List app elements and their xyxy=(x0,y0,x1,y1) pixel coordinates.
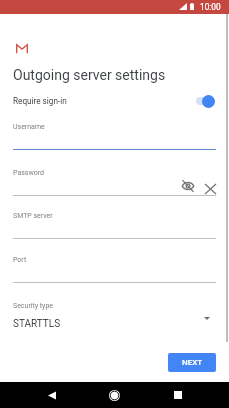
button[interactable] xyxy=(0,118,229,150)
staticText: SMTP server xyxy=(13,212,53,220)
button[interactable]: Home xyxy=(101,382,128,408)
staticText: Username xyxy=(13,123,45,131)
staticText: Security type xyxy=(13,302,54,310)
button[interactable] xyxy=(0,164,229,196)
button[interactable]: Recent apps xyxy=(164,382,191,408)
button[interactable] xyxy=(0,207,229,239)
button[interactable]: Show password xyxy=(180,179,195,193)
staticText: Require sign-in xyxy=(13,96,67,106)
staticText: Outgoing server settings xyxy=(13,67,166,83)
staticText: 10:00 xyxy=(200,2,221,12)
staticText: Port xyxy=(13,256,27,264)
button[interactable] xyxy=(0,251,229,283)
staticText: Password xyxy=(13,169,44,177)
staticText: NEXT xyxy=(182,358,203,367)
button[interactable]: NEXT xyxy=(168,353,216,372)
button[interactable]: Clear text xyxy=(202,182,218,196)
button[interactable]: Back xyxy=(38,382,65,408)
button[interactable]: Require sign-in xyxy=(0,90,229,111)
button[interactable]: Require sign-in xyxy=(192,94,217,108)
button[interactable] xyxy=(0,297,229,330)
staticText: STARTTLS xyxy=(13,318,61,330)
